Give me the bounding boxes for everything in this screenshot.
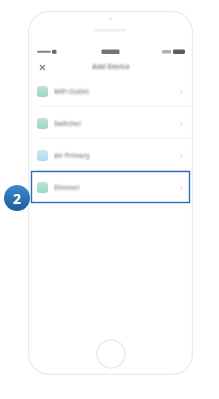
- button[interactable]: Step 2: [4, 185, 30, 211]
- staticText: 2: [13, 189, 22, 208]
- button[interactable]: Switcher: [31, 107, 190, 139]
- staticText: Dimmer: [54, 183, 80, 192]
- button[interactable]: Close: [35, 60, 49, 74]
- button[interactable]: WiFi Outlet: [31, 75, 190, 107]
- staticText: Add Device: [92, 62, 130, 72]
- button[interactable]: Dimmer: [31, 171, 190, 203]
- button[interactable]: Air Primary: [31, 139, 190, 171]
- staticText: WiFi Outlet: [54, 87, 90, 96]
- staticText: Air Primary: [54, 151, 90, 160]
- staticText: Switcher: [54, 119, 82, 128]
